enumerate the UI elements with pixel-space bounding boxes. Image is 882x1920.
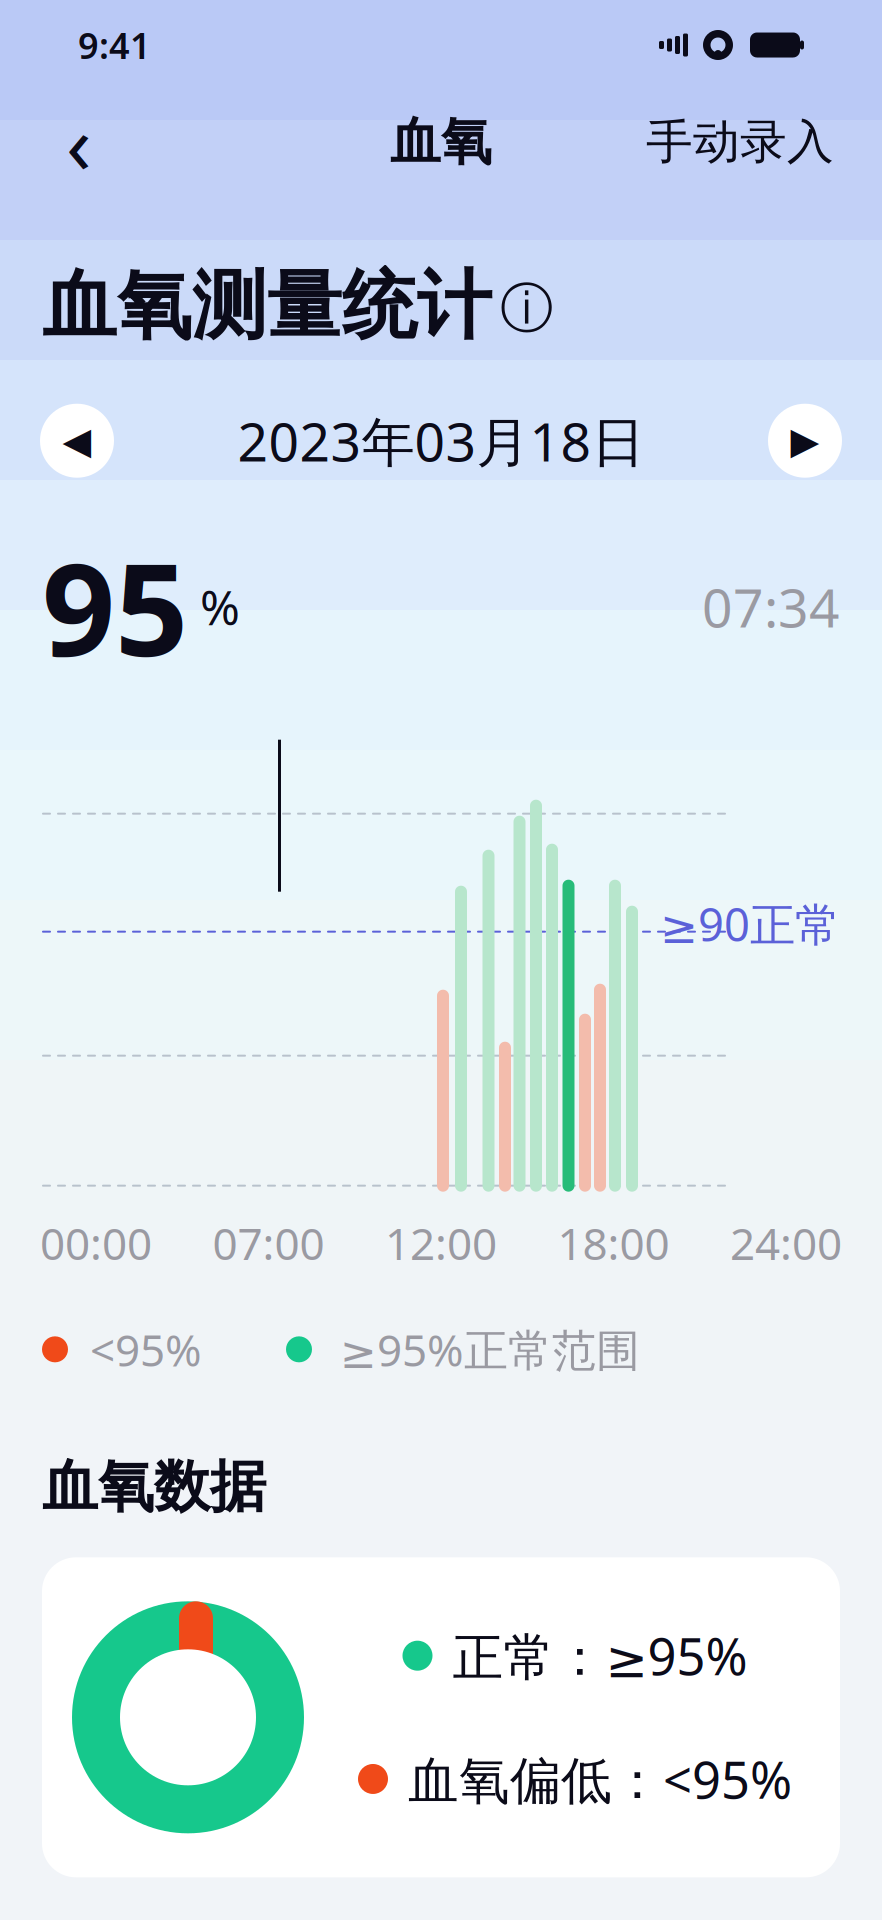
- staticText: 血氧: [390, 111, 492, 173]
- button[interactable]: 返回: [44, 102, 114, 182]
- staticText: <95%: [68, 1320, 202, 1378]
- staticText: 24:00: [730, 1214, 842, 1272]
- staticText: 手动录入: [646, 113, 834, 171]
- staticText: 9:41: [78, 21, 151, 69]
- staticText: 95: [42, 522, 188, 692]
- staticText: ▶: [790, 419, 819, 462]
- staticText: 正常：≥95%: [452, 1622, 747, 1689]
- button[interactable]: 说明: [500, 270, 553, 342]
- button[interactable]: 后一天: [768, 404, 842, 478]
- staticText: ⓘ: [500, 276, 553, 342]
- staticText: %: [188, 575, 240, 638]
- button[interactable]: 前一天: [40, 404, 114, 478]
- staticText: 2023年03月18日: [237, 405, 644, 476]
- staticText: 血氧数据: [42, 1452, 266, 1521]
- staticText: ‹: [66, 87, 92, 197]
- staticText: 18:00: [557, 1214, 669, 1272]
- button[interactable]: 手动录入: [642, 103, 838, 181]
- staticText: 12:00: [385, 1214, 497, 1272]
- staticText: ◀: [62, 419, 91, 462]
- staticText: 00:00: [40, 1214, 152, 1272]
- staticText: 血氧测量统计: [42, 260, 492, 352]
- staticText: 07:34: [702, 571, 840, 642]
- staticText: 07:00: [212, 1214, 324, 1272]
- staticText: ≥90正常: [660, 894, 840, 954]
- staticText: ≥95%正常范围: [312, 1320, 640, 1378]
- staticText: 血氧偏低：<95%: [408, 1745, 792, 1813]
